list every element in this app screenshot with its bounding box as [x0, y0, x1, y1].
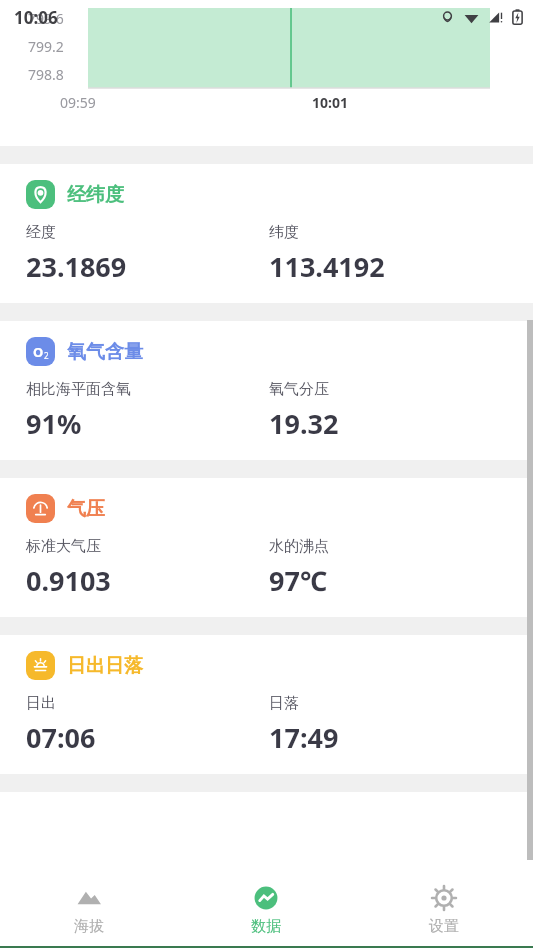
- staticText: O: [33, 343, 44, 361]
- staticText: 经纬度: [67, 183, 124, 207]
- staticText: 纬度: [269, 223, 299, 242]
- staticText: 经度: [26, 223, 56, 242]
- staticText: 日出日落: [67, 654, 143, 678]
- staticText: 113.4192: [269, 248, 385, 285]
- staticText: 799.2: [28, 37, 64, 56]
- staticText: 相比海平面含氧: [26, 380, 131, 399]
- staticText: 海拔: [74, 917, 104, 936]
- staticText: 09:59: [60, 93, 96, 112]
- button[interactable]: 海拔: [0, 874, 177, 946]
- button[interactable]: 经纬度: [0, 164, 533, 303]
- staticText: 97℃: [269, 562, 328, 599]
- staticText: 10:06: [14, 6, 58, 29]
- button[interactable]: O: [0, 321, 533, 460]
- staticText: 799.6: [28, 9, 64, 28]
- button[interactable]: 日出日落: [0, 635, 533, 774]
- staticText: 91%: [26, 405, 82, 442]
- staticText: 设置: [429, 917, 459, 936]
- staticText: 798.8: [28, 65, 64, 84]
- button[interactable]: 气压: [0, 478, 533, 617]
- staticText: 10:01: [312, 93, 348, 112]
- staticText: 23.1869: [26, 248, 127, 285]
- staticText: 氧气含量: [67, 340, 143, 364]
- button[interactable]: 设置: [355, 874, 533, 946]
- staticText: 2: [44, 350, 49, 361]
- staticText: 氧气分压: [269, 380, 329, 399]
- staticText: 水的沸点: [269, 537, 329, 556]
- staticText: 0.9103: [26, 562, 111, 599]
- staticText: 数据: [251, 917, 281, 936]
- staticText: 07:06: [26, 719, 96, 756]
- staticText: 日出: [26, 694, 56, 713]
- staticText: 19.32: [269, 405, 339, 442]
- staticText: 日落: [269, 694, 299, 713]
- staticText: 标准大气压: [26, 537, 101, 556]
- button[interactable]: 数据: [177, 874, 355, 946]
- staticText: 17:49: [269, 719, 339, 756]
- staticText: 气压: [67, 497, 105, 521]
